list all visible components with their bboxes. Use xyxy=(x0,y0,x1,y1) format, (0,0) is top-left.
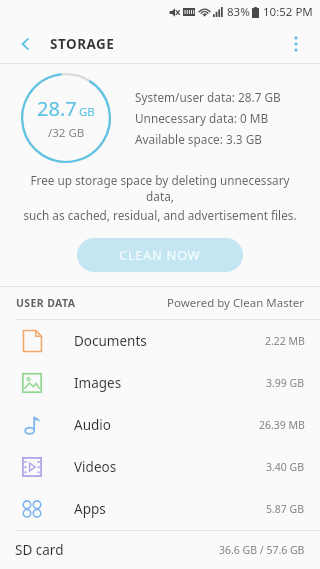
staticText: 10:52 PM xyxy=(263,4,313,20)
staticText: 3.40 GB xyxy=(266,460,305,474)
staticText: /32 GB xyxy=(48,125,85,141)
staticText: 83% xyxy=(227,4,250,20)
button[interactable]: More options xyxy=(278,26,314,62)
staticText: such as cached, residual, and advertisem… xyxy=(23,207,297,223)
button[interactable]: Apps xyxy=(0,488,320,530)
button[interactable]: Videos xyxy=(0,446,320,488)
staticText: STORAGE xyxy=(50,35,115,53)
staticText: 5.87 GB xyxy=(266,502,305,516)
staticText: 3.99 GB xyxy=(266,376,305,390)
staticText: Free up storage space by deleting unnece… xyxy=(18,172,302,204)
staticText: SD card xyxy=(15,541,64,559)
staticText: Videos xyxy=(74,458,117,476)
staticText: GB xyxy=(79,104,95,120)
staticText: CLEAN NOW xyxy=(119,246,201,264)
staticText: Documents xyxy=(74,332,147,350)
button[interactable]: CLEAN NOW xyxy=(77,238,243,272)
staticText: Audio xyxy=(74,416,111,434)
staticText: Available space: 3.3 GB xyxy=(135,131,262,147)
staticText: 28.7 xyxy=(37,95,77,122)
staticText: 36.6 GB / 57.6 GB xyxy=(219,543,305,557)
button[interactable]: Back xyxy=(8,26,44,62)
button[interactable]: Audio xyxy=(0,404,320,446)
button[interactable]: SD card xyxy=(0,531,320,569)
staticText: 2.22 MB xyxy=(265,334,305,348)
staticText: Apps xyxy=(74,500,106,518)
staticText: Unnecessary data: 0 MB xyxy=(135,110,269,126)
button[interactable]: Documents xyxy=(0,320,320,362)
staticText: Images xyxy=(74,374,122,392)
staticText: 26.39 MB xyxy=(259,418,305,432)
staticText: System/user data: 28.7 GB xyxy=(135,89,281,105)
staticText: Powered by Clean Master xyxy=(167,295,305,311)
staticText: USER DATA xyxy=(16,296,76,310)
button[interactable]: Images xyxy=(0,362,320,404)
